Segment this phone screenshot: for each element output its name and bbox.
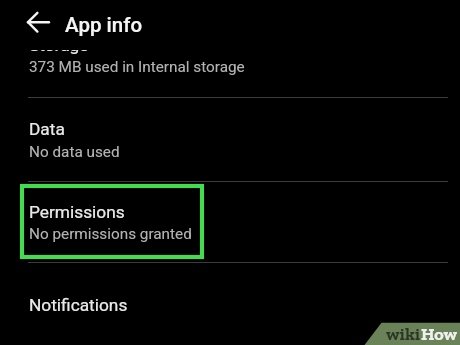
staticText: How: [421, 323, 458, 344]
staticText: No permissions granted: [29, 225, 192, 243]
staticText: Data: [29, 119, 65, 139]
button[interactable]: Navigate up: [14, 0, 62, 48]
staticText: Notifications: [29, 295, 128, 315]
staticText: Storage: [29, 35, 89, 55]
button[interactable]: Permissions highlight: [20, 184, 204, 259]
staticText: Permissions: [29, 202, 125, 222]
button[interactable]: Permissions: [0, 181, 460, 263]
staticText: App info: [65, 13, 143, 37]
button[interactable]: Notifications: [0, 262, 460, 345]
staticText: No data used: [29, 143, 120, 161]
staticText: wiki: [386, 323, 421, 344]
button[interactable]: Data: [0, 97, 460, 180]
staticText: 373 MB used in Internal storage: [29, 58, 245, 76]
button[interactable]: Storage: [0, 14, 460, 97]
